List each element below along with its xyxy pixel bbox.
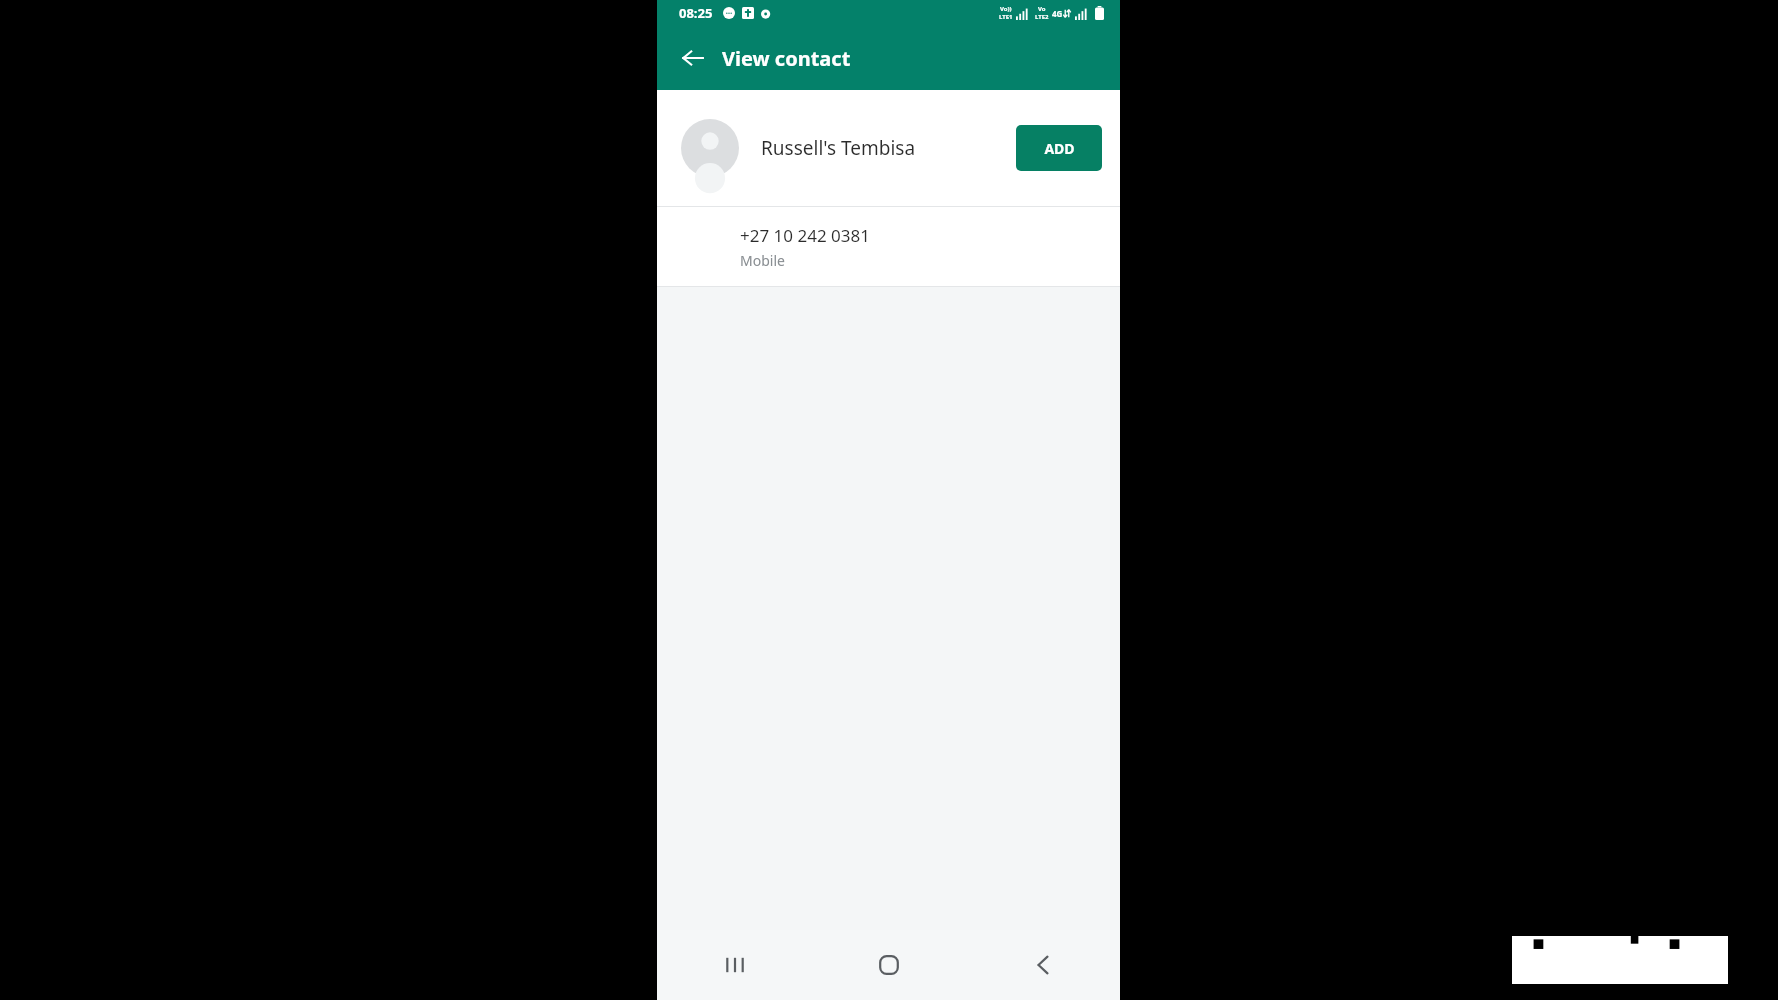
staticText: Vo)): [1000, 5, 1012, 13]
staticText: View contact: [722, 45, 851, 72]
staticText: Russell's Tembisa: [761, 135, 1010, 161]
staticText: 08:25: [679, 4, 713, 22]
staticText: +27 10 242 0381: [740, 224, 870, 247]
button[interactable]: Russell's Tembisa: [657, 90, 1120, 206]
button[interactable]: ADD: [1016, 125, 1102, 171]
staticText: Vo: [1038, 5, 1046, 13]
button[interactable]: Back: [671, 36, 715, 80]
staticText: 4G: [1052, 8, 1063, 19]
staticText: LTE1: [999, 13, 1013, 21]
staticText: Mobile: [740, 251, 785, 270]
staticText: ADD: [1044, 139, 1075, 158]
button[interactable]: Home: [812, 930, 966, 1000]
staticText: LTE2: [1035, 13, 1049, 21]
button[interactable]: Back: [966, 930, 1120, 1000]
button[interactable]: +27 10 242 0381: [657, 207, 1120, 286]
button[interactable]: Recent apps: [657, 930, 812, 1000]
